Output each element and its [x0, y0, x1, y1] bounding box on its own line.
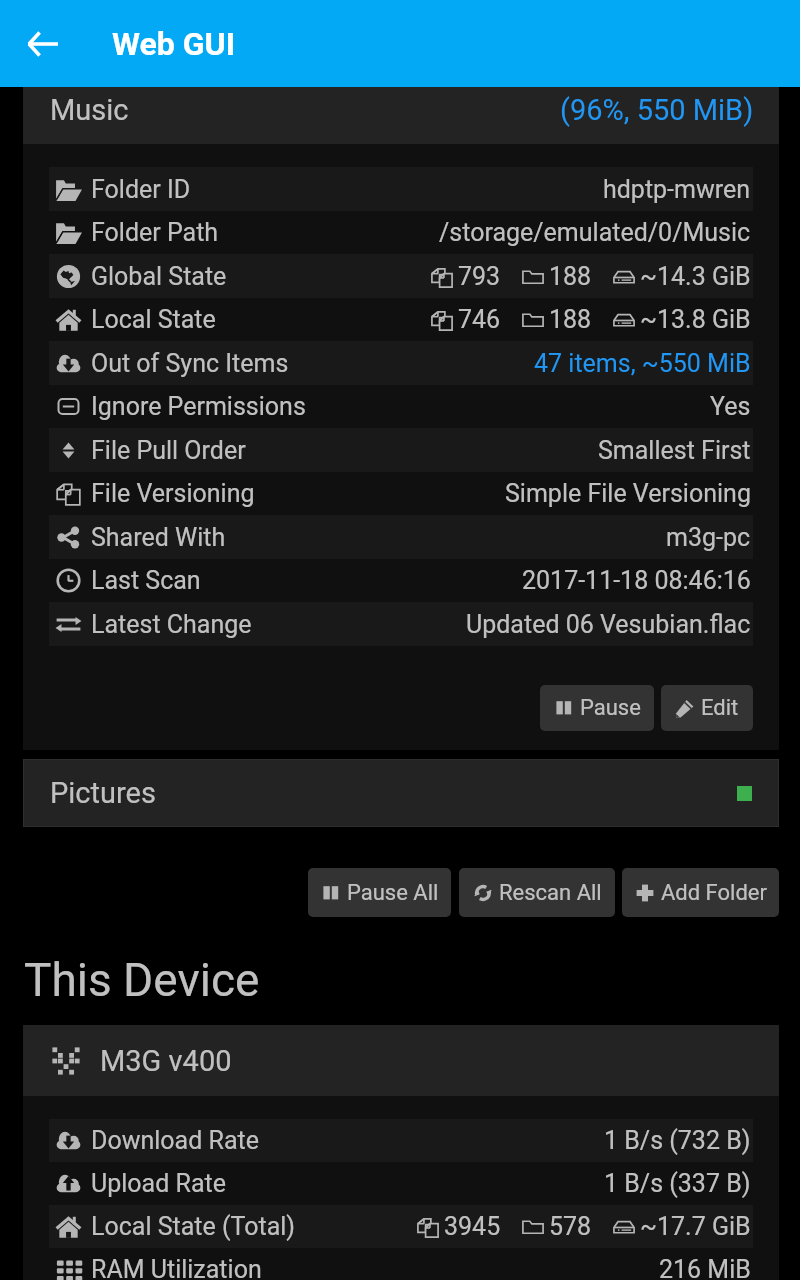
staticText: 578 — [549, 1212, 592, 1241]
button[interactable]: Pause All — [308, 868, 451, 917]
staticText: This Device — [24, 953, 260, 1007]
staticText: (96%, 550 MiB) — [560, 93, 754, 127]
button[interactable]: Download Rate — [55, 1119, 751, 1162]
button[interactable]: Local State (Total) — [55, 1205, 751, 1248]
staticText: m3g-pc — [666, 523, 751, 552]
staticText: Simple File Versioning — [505, 479, 751, 508]
staticText: Local State (Total) — [91, 1212, 296, 1241]
button[interactable]: RAM Utilization — [55, 1248, 751, 1280]
staticText: 746 — [458, 305, 501, 334]
button[interactable]: Pause — [540, 685, 654, 731]
button[interactable]: Global State — [55, 254, 751, 298]
button[interactable]: Folder Path — [55, 211, 751, 254]
staticText: 188 — [549, 305, 592, 334]
staticText: 1 B/s (732 B) — [604, 1126, 751, 1155]
staticText: Add Folder — [661, 880, 767, 906]
staticText: Last Scan — [91, 566, 201, 595]
staticText: 216 MiB — [659, 1255, 751, 1280]
staticText: RAM Utilization — [91, 1255, 262, 1280]
staticText: hdptp-mwren — [603, 175, 751, 204]
staticText: 47 items, ~550 MiB — [534, 349, 751, 378]
staticText: 2017-11-18 08:46:16 — [522, 566, 751, 595]
button[interactable]: M3G v400 — [23, 1025, 779, 1096]
button[interactable]: Last Scan — [55, 559, 751, 602]
button[interactable]: Add Folder — [622, 868, 779, 917]
staticText: Shared With — [91, 523, 226, 552]
button[interactable]: File Versioning — [55, 472, 751, 515]
button[interactable]: Local State — [55, 298, 751, 341]
button[interactable]: Rescan All — [459, 868, 615, 917]
staticText: Latest Change — [91, 610, 252, 639]
staticText: 188 — [549, 262, 592, 291]
button[interactable]: Out of Sync Items — [55, 341, 751, 385]
button[interactable]: Upload Rate — [55, 1162, 751, 1205]
button[interactable]: Back — [0, 1, 86, 87]
staticText: M3G v400 — [100, 1044, 232, 1078]
staticText: Local State — [91, 305, 216, 334]
staticText: ~14.3 GiB — [640, 262, 751, 291]
staticText: Pause — [580, 695, 641, 721]
staticText: Global State — [91, 262, 227, 291]
staticText: Updated 06 Vesubian.flac — [466, 610, 751, 639]
staticText: File Pull Order — [91, 436, 246, 465]
staticText: 1 B/s (337 B) — [604, 1169, 751, 1198]
button[interactable]: Latest Change — [55, 602, 751, 646]
button[interactable]: Pictures — [24, 760, 778, 826]
button[interactable]: Edit — [661, 685, 753, 731]
staticText: Rescan All — [499, 880, 602, 906]
staticText: Out of Sync Items — [91, 349, 289, 378]
staticText: 793 — [458, 262, 501, 291]
staticText: /storage/emulated/0/Music — [439, 218, 751, 247]
staticText: ~17.7 GiB — [640, 1212, 751, 1241]
staticText: Music — [50, 93, 129, 127]
button[interactable]: File Pull Order — [55, 428, 751, 472]
staticText: ~13.8 GiB — [640, 305, 751, 334]
staticText: Download Rate — [91, 1126, 259, 1155]
staticText: Upload Rate — [91, 1169, 226, 1198]
button[interactable]: Music — [23, 76, 779, 144]
staticText: Pause All — [347, 880, 439, 906]
staticText: Folder ID — [91, 175, 191, 204]
staticText: Edit — [701, 695, 739, 721]
button[interactable]: Shared With — [55, 515, 751, 559]
staticText: Web GUI — [112, 25, 235, 63]
button[interactable]: Folder ID — [55, 167, 751, 211]
staticText: Yes — [710, 392, 751, 421]
staticText: Folder Path — [91, 218, 219, 247]
staticText: 3945 — [444, 1212, 501, 1241]
staticText: Pictures — [50, 776, 156, 810]
button[interactable]: Ignore Permissions — [55, 385, 751, 428]
staticText: File Versioning — [91, 479, 255, 508]
staticText: Ignore Permissions — [91, 392, 306, 421]
staticText: Smallest First — [598, 436, 751, 465]
